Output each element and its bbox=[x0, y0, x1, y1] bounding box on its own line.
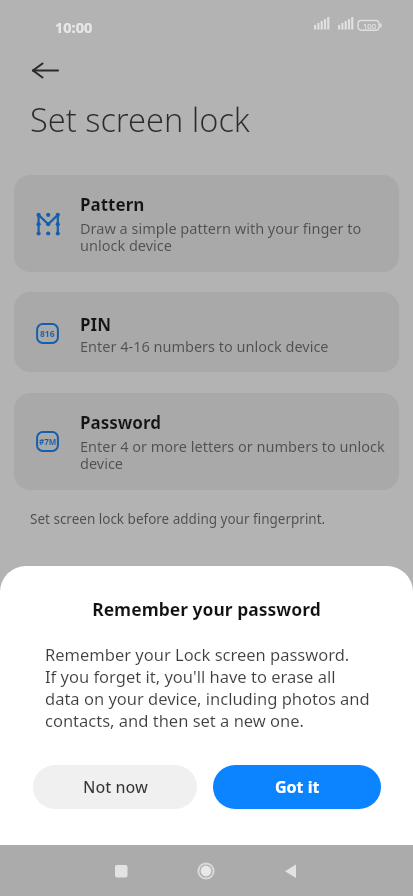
staticText: Pattern bbox=[80, 193, 145, 216]
staticText: Set screen lock before adding your finge… bbox=[30, 510, 326, 528]
staticText: Got it bbox=[275, 776, 320, 798]
staticText: PIN bbox=[80, 313, 111, 336]
button[interactable]: Pattern bbox=[14, 175, 399, 272]
staticText: Enter 4-16 numbers to unlock device bbox=[80, 336, 329, 356]
staticText: Password bbox=[80, 411, 161, 434]
button[interactable]: 816 bbox=[14, 292, 399, 372]
button[interactable] bbox=[194, 859, 218, 883]
staticText: 10:00 bbox=[55, 17, 93, 37]
staticText: Set screen lock bbox=[30, 97, 250, 141]
button[interactable]: #7M bbox=[14, 393, 399, 490]
staticText: #7M bbox=[39, 436, 57, 447]
button[interactable] bbox=[113, 863, 129, 879]
staticText: Enter 4 or more letters or numbers to un… bbox=[80, 436, 385, 473]
staticText: 816 bbox=[40, 328, 55, 340]
button[interactable]: Got it bbox=[213, 765, 381, 809]
staticText: Remember your Lock screen password. If y… bbox=[45, 643, 370, 731]
staticText: 100 bbox=[351, 21, 388, 31]
button[interactable] bbox=[281, 859, 303, 883]
staticText: Not now bbox=[83, 776, 148, 798]
staticText: Draw a simple pattern with your finger t… bbox=[80, 218, 362, 255]
staticText: Remember your password bbox=[0, 597, 413, 621]
button[interactable]: Not now bbox=[33, 765, 197, 809]
button[interactable] bbox=[24, 52, 64, 88]
